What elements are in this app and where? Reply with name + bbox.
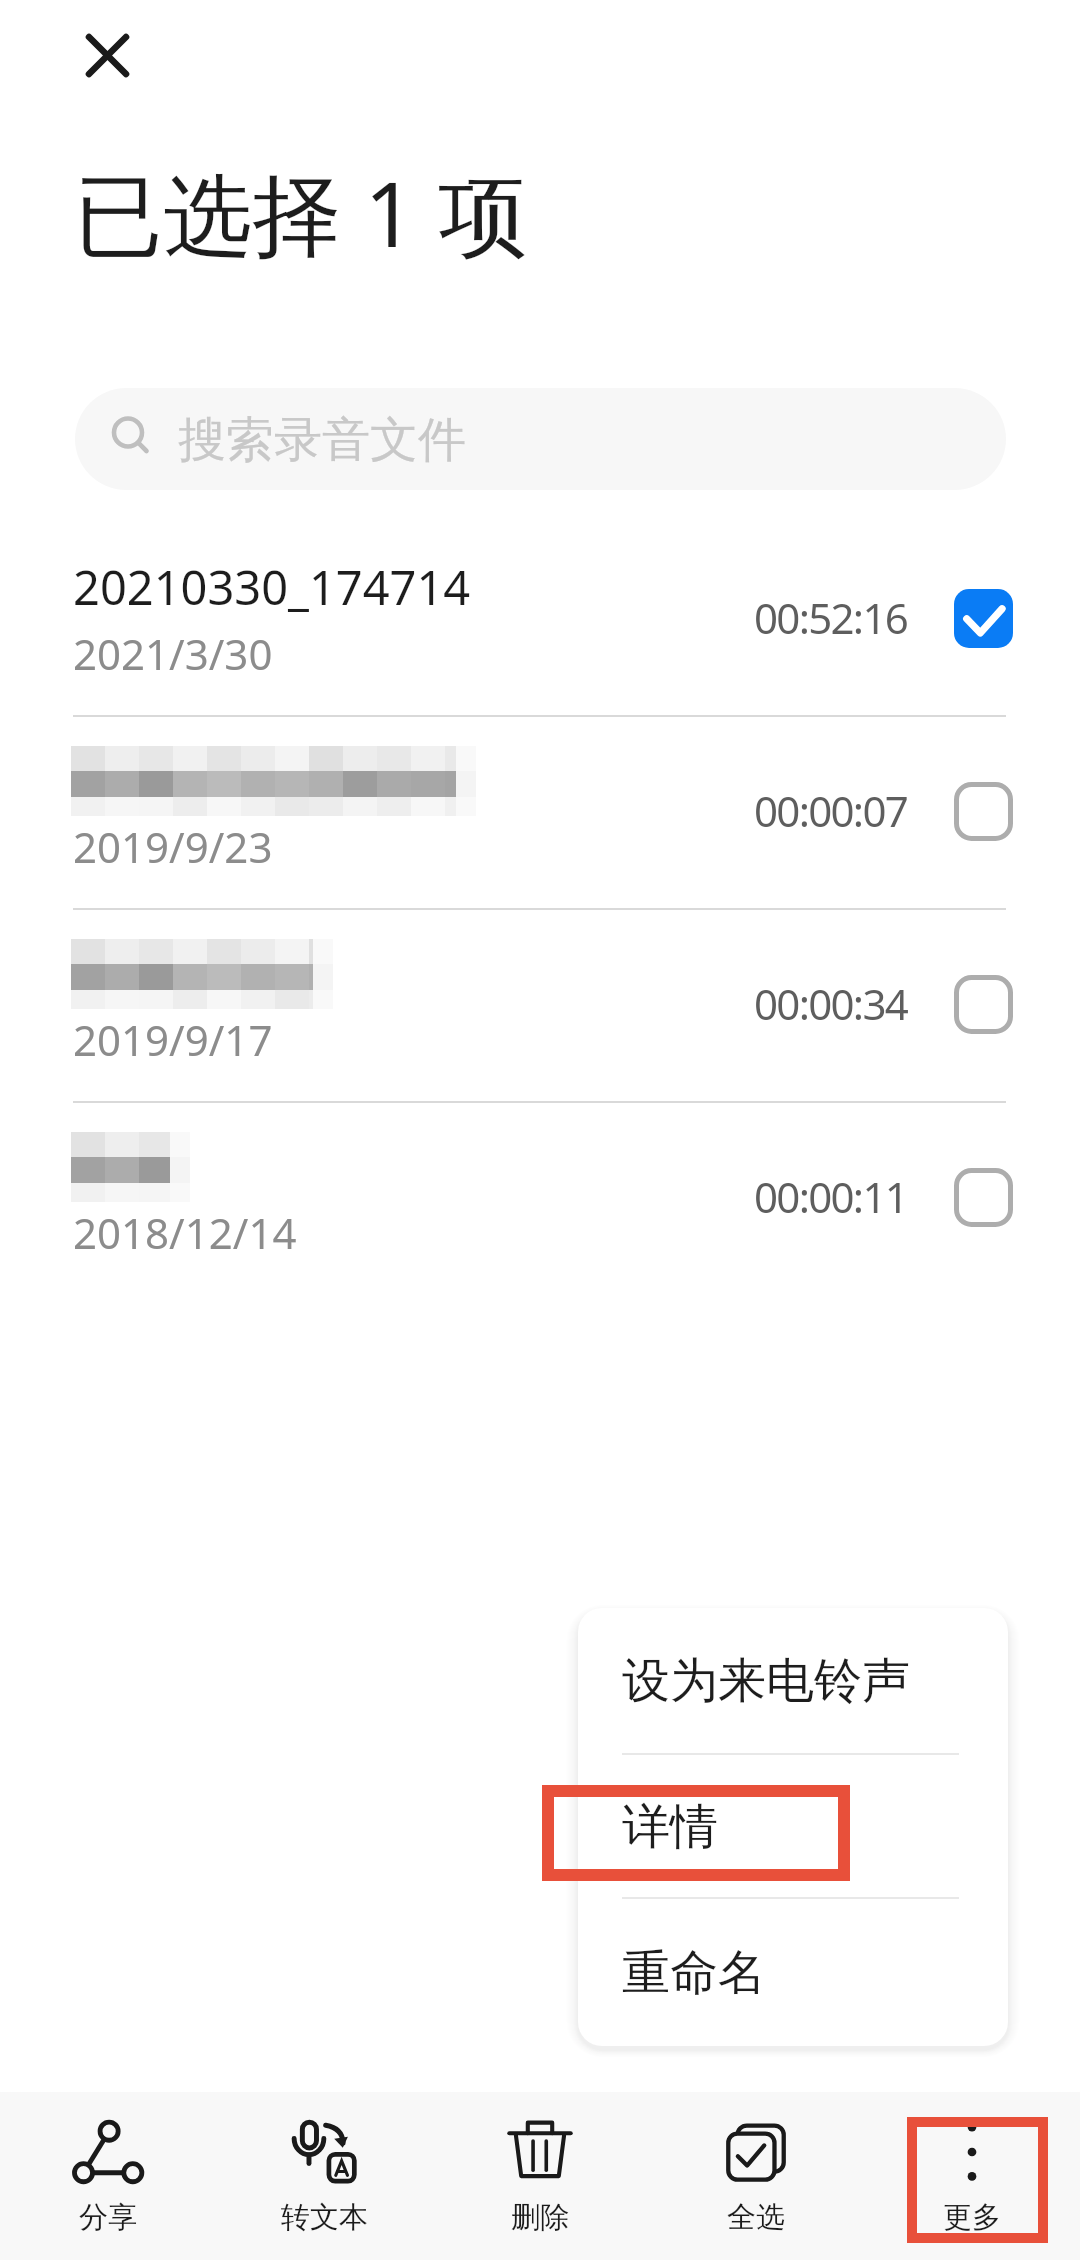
staticText: 00:00:11 [754,1168,908,1225]
staticText: 00:00:07 [754,782,908,839]
button[interactable]: Share [0,2092,216,2260]
button[interactable]: 2019/9/23 [0,715,1080,908]
staticText: 全选 [727,2199,785,2236]
staticText: 删除 [511,2199,569,2236]
staticText: 00:52:16 [754,589,908,646]
button[interactable]: 2018/12/14 [0,1101,1080,1294]
staticText: 已选择 1 项 [74,152,528,274]
staticText: 搜索录音文件 [178,410,466,470]
staticText: 20210330_174714 [73,555,471,619]
staticText: 重命名 [622,1943,766,2003]
staticText: 00:00:34 [754,975,908,1032]
button[interactable]: 设为来电铃声 [578,1608,1008,1754]
button[interactable]: 重命名 [578,1900,1008,2046]
button[interactable]: Select item [954,1168,1013,1227]
staticText: 2019/9/17 [73,1011,273,1068]
button[interactable]: Close [52,0,162,110]
button[interactable]: Select item [954,589,1013,648]
button[interactable]: 20210330_174714 [0,522,1080,715]
staticText: 2019/9/23 [73,818,273,875]
staticText: 2021/3/30 [73,625,273,682]
button[interactable]: More [864,2092,1080,2260]
button[interactable]: 搜索录音文件 [75,388,1006,490]
button[interactable]: Select item [954,782,1013,841]
staticText: 转文本 [281,2199,368,2236]
button[interactable]: Select all [648,2092,864,2260]
button[interactable]: Delete [432,2092,648,2260]
staticText: 2018/12/14 [73,1204,297,1261]
staticText: 分享 [79,2199,137,2236]
staticText: 更多 [943,2199,1001,2236]
staticText: 详情 [622,1797,718,1857]
button[interactable]: 2019/9/17 [0,908,1080,1101]
staticText: 设为来电铃声 [622,1651,910,1711]
button[interactable]: Convert to text [216,2092,432,2260]
button[interactable]: 详情 [578,1754,1008,1900]
button[interactable]: Select item [954,975,1013,1034]
